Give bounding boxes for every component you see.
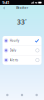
- button[interactable]: Alerts: [2, 55, 41, 65]
- button[interactable]: Settings: [29, 92, 44, 98]
- button[interactable]: Forecast: [15, 92, 29, 98]
- staticText: Weather: [16, 6, 28, 10]
- staticText: °: [25, 17, 27, 23]
- staticText: 9:41: [2, 0, 9, 5]
- staticText: Hourly: [10, 39, 19, 42]
- button[interactable]: Today: [0, 92, 15, 98]
- staticText: Alerts: [10, 58, 18, 62]
- staticText: Daily: [10, 49, 16, 52]
- button[interactable]: Daily: [2, 46, 41, 55]
- button[interactable]: Back: [0, 5, 7, 10]
- button[interactable]: Hourly: [2, 36, 41, 45]
- staticText: 33: [17, 17, 25, 26]
